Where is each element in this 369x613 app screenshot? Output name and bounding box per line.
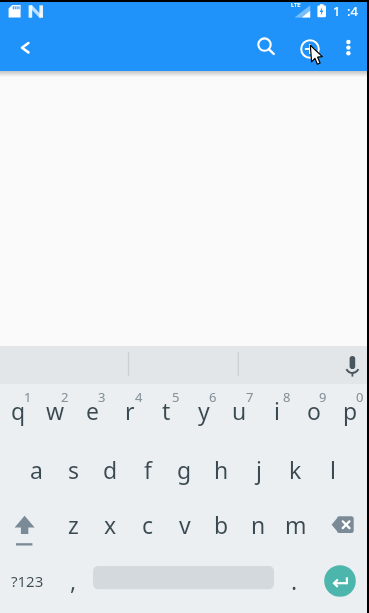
staticText: ?123 [11, 571, 44, 591]
staticText: r [125, 395, 135, 426]
staticText: 1 [24, 388, 32, 406]
staticText: 7 [246, 388, 254, 406]
staticText: m [285, 509, 307, 540]
button[interactable] [290, 27, 330, 67]
staticText: y [198, 395, 210, 426]
button[interactable]: u [221, 382, 258, 439]
button[interactable]: h [203, 441, 240, 498]
staticText: o [307, 395, 321, 426]
staticText: 4 [135, 388, 143, 406]
button[interactable]: a [18, 441, 55, 498]
button[interactable]: z [55, 496, 92, 553]
staticText: 3 [98, 388, 106, 406]
button[interactable]: , [55, 552, 92, 609]
staticText: , [70, 565, 77, 596]
button[interactable] [314, 498, 369, 555]
button[interactable] [245, 27, 285, 67]
button[interactable]: p [332, 382, 369, 439]
button[interactable]: i [258, 382, 295, 439]
staticText: s [68, 454, 80, 485]
staticText: x [104, 509, 117, 540]
staticText: f [144, 454, 152, 485]
staticText: t [162, 395, 171, 426]
button[interactable] [0, 498, 55, 555]
button[interactable]: w [37, 382, 74, 439]
staticText: . [291, 565, 298, 596]
staticText: 1 [333, 2, 341, 20]
staticText: 2 [61, 388, 69, 406]
button[interactable]: ?123 [0, 552, 55, 609]
button[interactable]: y [185, 382, 222, 439]
staticText: e [86, 395, 99, 426]
button[interactable] [4, 27, 44, 67]
staticText: n [251, 509, 266, 540]
button[interactable]: c [129, 496, 166, 553]
staticText: 6 [209, 388, 217, 406]
button[interactable]: g [166, 441, 203, 498]
button[interactable] [330, 27, 366, 67]
button[interactable]: f [129, 441, 166, 498]
staticText: j [256, 454, 262, 485]
staticText: 9 [319, 388, 327, 406]
button[interactable]: q [0, 382, 37, 439]
staticText: w [46, 395, 65, 426]
staticText: LTE [291, 1, 301, 9]
staticText: z [68, 509, 79, 540]
staticText: h [214, 454, 229, 485]
staticText: 5 [172, 388, 180, 406]
staticText: a [30, 454, 43, 485]
button[interactable]: j [240, 441, 277, 498]
staticText: p [343, 395, 358, 426]
staticText: k [289, 454, 302, 485]
button[interactable]: o [295, 382, 332, 439]
button[interactable]: d [92, 441, 129, 498]
staticText: c [142, 509, 154, 540]
button[interactable]: s [55, 441, 92, 498]
staticText: :4 [347, 2, 358, 20]
button[interactable]: v [166, 496, 203, 553]
button[interactable] [92, 556, 277, 613]
staticText: v [179, 509, 191, 540]
button[interactable]: x [92, 496, 129, 553]
button[interactable]: l [314, 441, 351, 498]
button[interactable]: n [240, 496, 277, 553]
staticText: b [214, 509, 229, 540]
button[interactable] [314, 556, 369, 613]
staticText: l [330, 454, 336, 485]
staticText: i [274, 395, 280, 426]
staticText: 0 [356, 388, 364, 406]
staticText: 8 [283, 388, 291, 406]
staticText: u [232, 395, 247, 426]
button[interactable]: k [277, 441, 314, 498]
button[interactable]: e [74, 382, 111, 439]
button[interactable]: b [203, 496, 240, 553]
button[interactable]: . [276, 552, 313, 609]
button[interactable]: m [277, 496, 314, 553]
staticText: q [11, 395, 26, 426]
staticText: d [103, 454, 118, 485]
button[interactable]: t [148, 382, 185, 439]
button[interactable]: r [111, 382, 148, 439]
staticText: g [177, 454, 192, 485]
